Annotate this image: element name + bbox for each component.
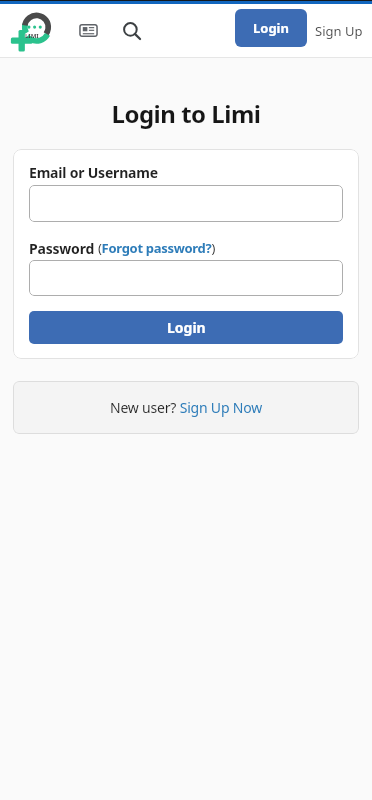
button[interactable]: LIMI	[13, 7, 60, 54]
staticText: LIMI	[25, 32, 39, 40]
staticText: New user? Sign Up Now	[110, 398, 262, 417]
button[interactable]: Login	[235, 9, 307, 47]
staticText: Login to Limi	[0, 97, 372, 130]
button[interactable]	[29, 185, 343, 222]
staticText: Login	[253, 19, 289, 37]
staticText: Sign Up	[315, 22, 363, 40]
staticText: Login	[167, 318, 206, 337]
button[interactable]	[122, 21, 143, 42]
staticText: Email or Username	[29, 163, 158, 182]
button[interactable]: Sign Up	[306, 4, 372, 57]
button[interactable]: Login	[29, 311, 343, 344]
button[interactable]: New user? Sign Up Now	[13, 381, 359, 434]
button[interactable]	[79, 21, 98, 40]
staticText: (Forgot password?)	[98, 239, 215, 257]
button[interactable]: (Forgot password?)	[98, 239, 215, 257]
button[interactable]	[29, 260, 343, 296]
staticText: Password	[29, 239, 98, 258]
